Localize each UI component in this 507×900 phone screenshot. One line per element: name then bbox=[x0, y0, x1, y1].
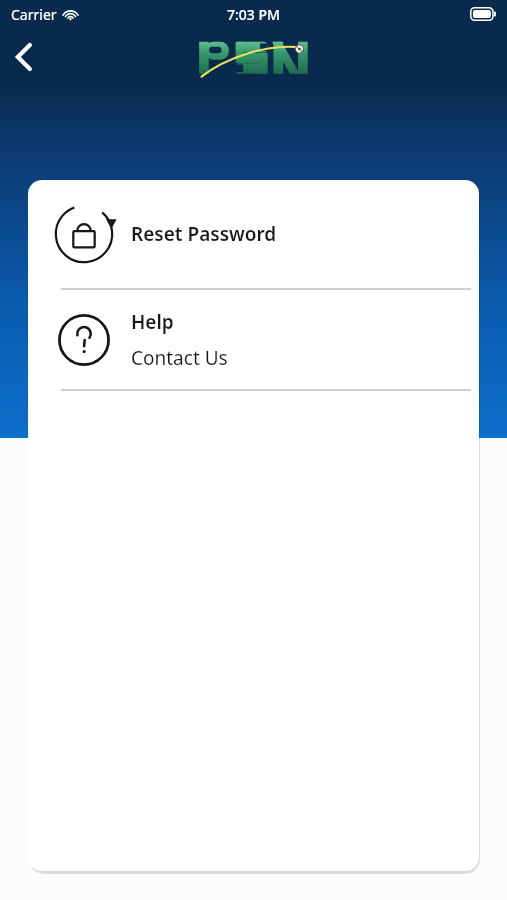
staticText: Help bbox=[131, 309, 174, 335]
staticText: 7:03 PM bbox=[227, 5, 280, 24]
button[interactable]: Back bbox=[0, 33, 48, 81]
staticText: Carrier bbox=[11, 5, 57, 24]
staticText: Reset Password bbox=[131, 221, 277, 247]
staticText: Contact Us bbox=[131, 345, 228, 371]
button[interactable]: Reset Password bbox=[28, 180, 479, 288]
button[interactable]: Help bbox=[28, 290, 479, 389]
